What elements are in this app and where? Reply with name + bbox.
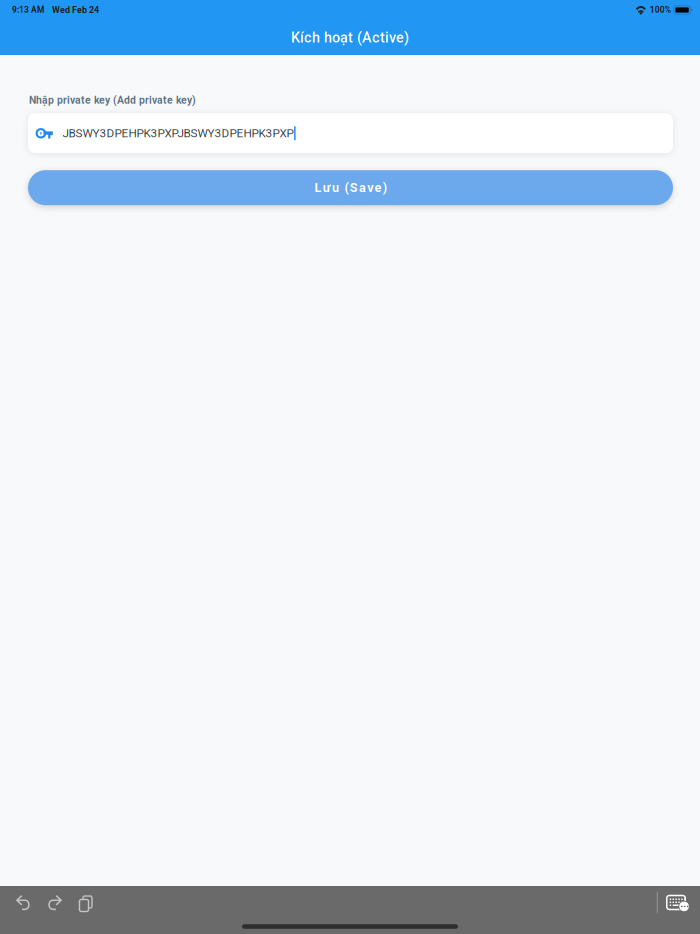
staticText: Nhập private key (Add private key) bbox=[29, 94, 196, 106]
staticText: Kích hoạt (Active) bbox=[291, 29, 409, 46]
staticText: Wed Feb 24 bbox=[52, 5, 99, 15]
button[interactable]: Paste bbox=[69, 886, 99, 919]
button[interactable]: Lưu (Save) bbox=[0, 170, 700, 205]
staticText: Lưu (Save) bbox=[314, 180, 387, 195]
staticText: JBSWY3DPEHPK3PXPJBSWY3DPEHPK3PXP bbox=[63, 126, 294, 140]
staticText: 100% bbox=[650, 5, 671, 15]
button[interactable]: Redo bbox=[39, 886, 69, 919]
staticText: 9:13 AM bbox=[12, 5, 44, 15]
button[interactable]: Undo bbox=[9, 886, 39, 919]
button[interactable]: Hide Keyboard bbox=[658, 886, 694, 919]
button[interactable]: JBSWY3DPEHPK3PXPJBSWY3DPEHPK3PXP bbox=[0, 113, 700, 153]
